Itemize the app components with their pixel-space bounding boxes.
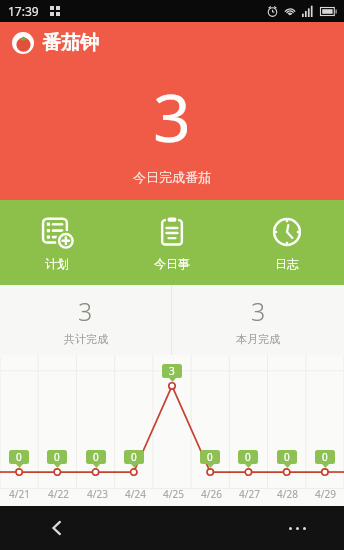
staticText: 3 (251, 294, 266, 328)
button[interactable]: More options (280, 511, 314, 545)
button[interactable]: 今日事 (114, 200, 229, 285)
staticText: 日志 (275, 256, 299, 271)
staticText: 4/27 (239, 487, 260, 501)
staticText: 4/22 (48, 487, 69, 501)
button[interactable]: 番茄钟 logo (12, 32, 34, 54)
button[interactable]: Back (40, 511, 74, 545)
staticText: 0 (207, 450, 213, 464)
staticText: 4/29 (315, 487, 336, 501)
staticText: 17:39 (8, 3, 39, 19)
staticText: 0 (131, 450, 137, 464)
staticText: 3 (169, 364, 175, 378)
staticText: 0 (322, 450, 328, 464)
staticText: 0 (54, 450, 60, 464)
staticText: 0 (284, 450, 290, 464)
staticText: 今日事 (154, 256, 190, 271)
staticText: 4/25 (163, 487, 184, 501)
staticText: 4/24 (125, 487, 146, 501)
staticText: 计划 (45, 256, 69, 271)
staticText: 本月完成 (236, 332, 280, 346)
staticText: 0 (93, 450, 99, 464)
button[interactable]: 3 (0, 285, 171, 355)
button[interactable]: 3 (172, 285, 344, 355)
button[interactable]: 日志 (229, 200, 344, 285)
staticText: 4/28 (277, 487, 298, 501)
staticText: 3 (153, 71, 191, 161)
staticText: 共计完成 (64, 332, 108, 346)
staticText: 0 (245, 450, 251, 464)
staticText: 0 (16, 450, 22, 464)
staticText: 4/21 (9, 487, 30, 501)
button[interactable]: 计划 (0, 200, 114, 285)
staticText: 今日完成番茄 (133, 169, 211, 185)
staticText: 3 (78, 294, 93, 328)
staticText: 4/23 (87, 487, 108, 501)
staticText: 番茄钟 (42, 31, 99, 55)
staticText: 4/26 (201, 487, 222, 501)
